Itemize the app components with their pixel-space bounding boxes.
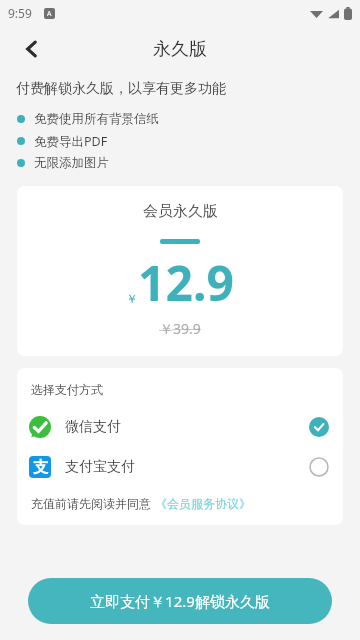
button[interactable]: 《会员服务协议》 <box>155 496 251 511</box>
staticText: 免费使用所有背景信纸 <box>34 111 159 127</box>
button[interactable]: Back <box>12 29 52 69</box>
staticText: 免费导出PDF <box>34 133 108 150</box>
button[interactable]: 会员永久版 <box>17 186 343 356</box>
staticText: 9:59 <box>8 5 32 21</box>
staticText: 《会员服务协议》 <box>155 496 251 511</box>
staticText: 支付宝支付 <box>65 458 135 476</box>
button[interactable]: 微信支付 <box>17 407 343 447</box>
staticText: 支 <box>33 458 48 477</box>
staticText: 选择支付方式 <box>31 382 103 397</box>
staticText: ￥ <box>126 291 138 306</box>
staticText: 付费解锁永久版，以享有更多功能 <box>16 80 226 98</box>
staticText: 微信支付 <box>65 418 121 436</box>
staticText: 充值前请先阅读并同意 <box>31 495 155 511</box>
button[interactable]: 立即支付￥12.9解锁永久版 <box>28 578 332 624</box>
staticText: 无限添加图片 <box>34 155 109 171</box>
staticText: A <box>47 9 52 19</box>
staticText: 永久版 <box>153 38 207 61</box>
staticText: 会员永久版 <box>143 202 218 221</box>
button[interactable]: 支 <box>17 447 343 487</box>
staticText: 立即支付￥12.9解锁永久版 <box>90 591 270 611</box>
staticText: 12.9 <box>138 250 234 315</box>
staticText: ￥39.9 <box>159 319 201 338</box>
